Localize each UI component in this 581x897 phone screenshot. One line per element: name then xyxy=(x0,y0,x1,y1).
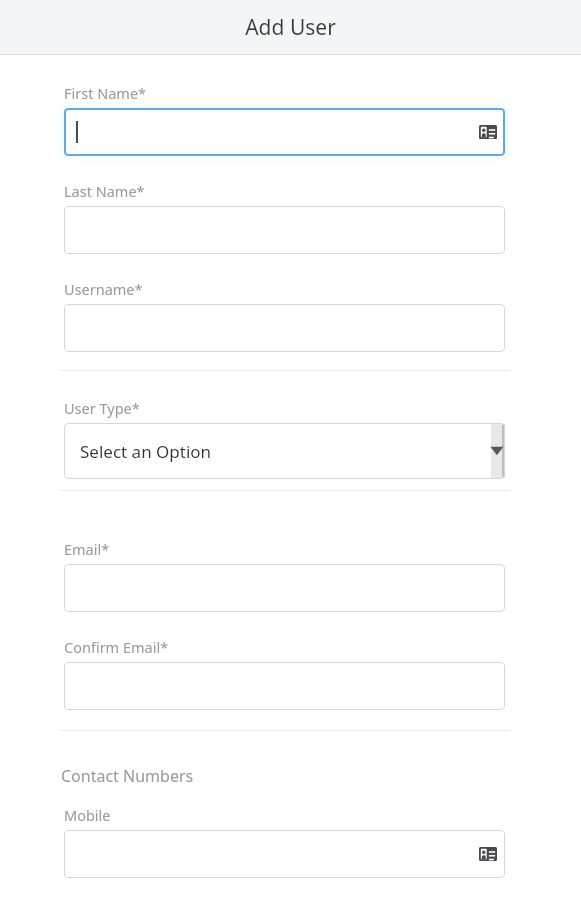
staticText: First Name* xyxy=(64,83,147,103)
staticText: User Type* xyxy=(64,398,140,418)
button[interactable] xyxy=(64,662,505,710)
button[interactable] xyxy=(64,564,505,612)
staticText: Confirm Email* xyxy=(64,637,169,657)
button[interactable]: Choose from contacts xyxy=(64,830,505,878)
staticText: Username* xyxy=(64,279,143,299)
button[interactable]: Select an Option xyxy=(64,423,505,479)
staticText: Add User xyxy=(0,13,581,42)
button[interactable]: Choose from contacts xyxy=(64,108,505,156)
button[interactable] xyxy=(64,304,505,352)
staticText: Email* xyxy=(64,539,110,559)
staticText: Mobile xyxy=(64,805,111,825)
button[interactable]: Choose from contacts xyxy=(479,847,497,861)
button[interactable]: Choose from contacts xyxy=(479,125,497,139)
staticText: Last Name* xyxy=(64,181,145,201)
staticText: Contact Numbers xyxy=(61,765,194,787)
staticText: Select an Option xyxy=(80,440,212,463)
button[interactable] xyxy=(64,206,505,254)
